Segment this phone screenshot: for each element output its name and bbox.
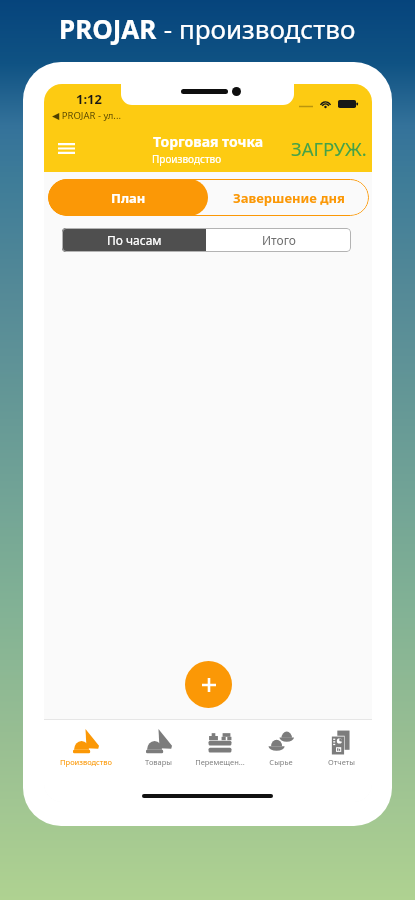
staticText: ◀ PROJAR - ул... bbox=[52, 109, 121, 122]
staticText: Производство bbox=[60, 757, 112, 767]
staticText: Итого bbox=[262, 232, 296, 248]
staticText: - производство bbox=[157, 11, 356, 46]
button[interactable]: По часам bbox=[62, 228, 206, 252]
button[interactable]: ЗАГРУЖ. bbox=[287, 132, 371, 165]
staticText: Сырье bbox=[269, 757, 293, 767]
button[interactable]: План bbox=[48, 179, 208, 216]
staticText: Завершение дня bbox=[233, 189, 345, 207]
staticText: PROJAR bbox=[59, 11, 157, 46]
button[interactable]: Menu bbox=[53, 135, 79, 161]
staticText: Перемещен... bbox=[195, 757, 245, 767]
staticText: Производство bbox=[152, 152, 222, 166]
button[interactable]: Перемещен... bbox=[189, 720, 250, 768]
button[interactable]: Итого bbox=[206, 228, 351, 252]
button[interactable]: Add bbox=[185, 661, 232, 708]
staticText: По часам bbox=[107, 232, 162, 248]
button[interactable]: Производство bbox=[44, 720, 128, 768]
button[interactable]: Сырье bbox=[250, 720, 311, 768]
staticText: 1:12 bbox=[76, 90, 102, 108]
button[interactable]: Завершение дня bbox=[208, 179, 369, 216]
button[interactable]: Отчеты bbox=[311, 720, 372, 768]
button[interactable]: Товары bbox=[128, 720, 189, 768]
staticText: Товары bbox=[145, 757, 172, 767]
staticText: Отчеты bbox=[328, 757, 355, 767]
staticText: ЗАГРУЖ. bbox=[291, 136, 367, 161]
staticText: План bbox=[111, 189, 146, 207]
staticText: Торговая точка bbox=[153, 132, 264, 151]
